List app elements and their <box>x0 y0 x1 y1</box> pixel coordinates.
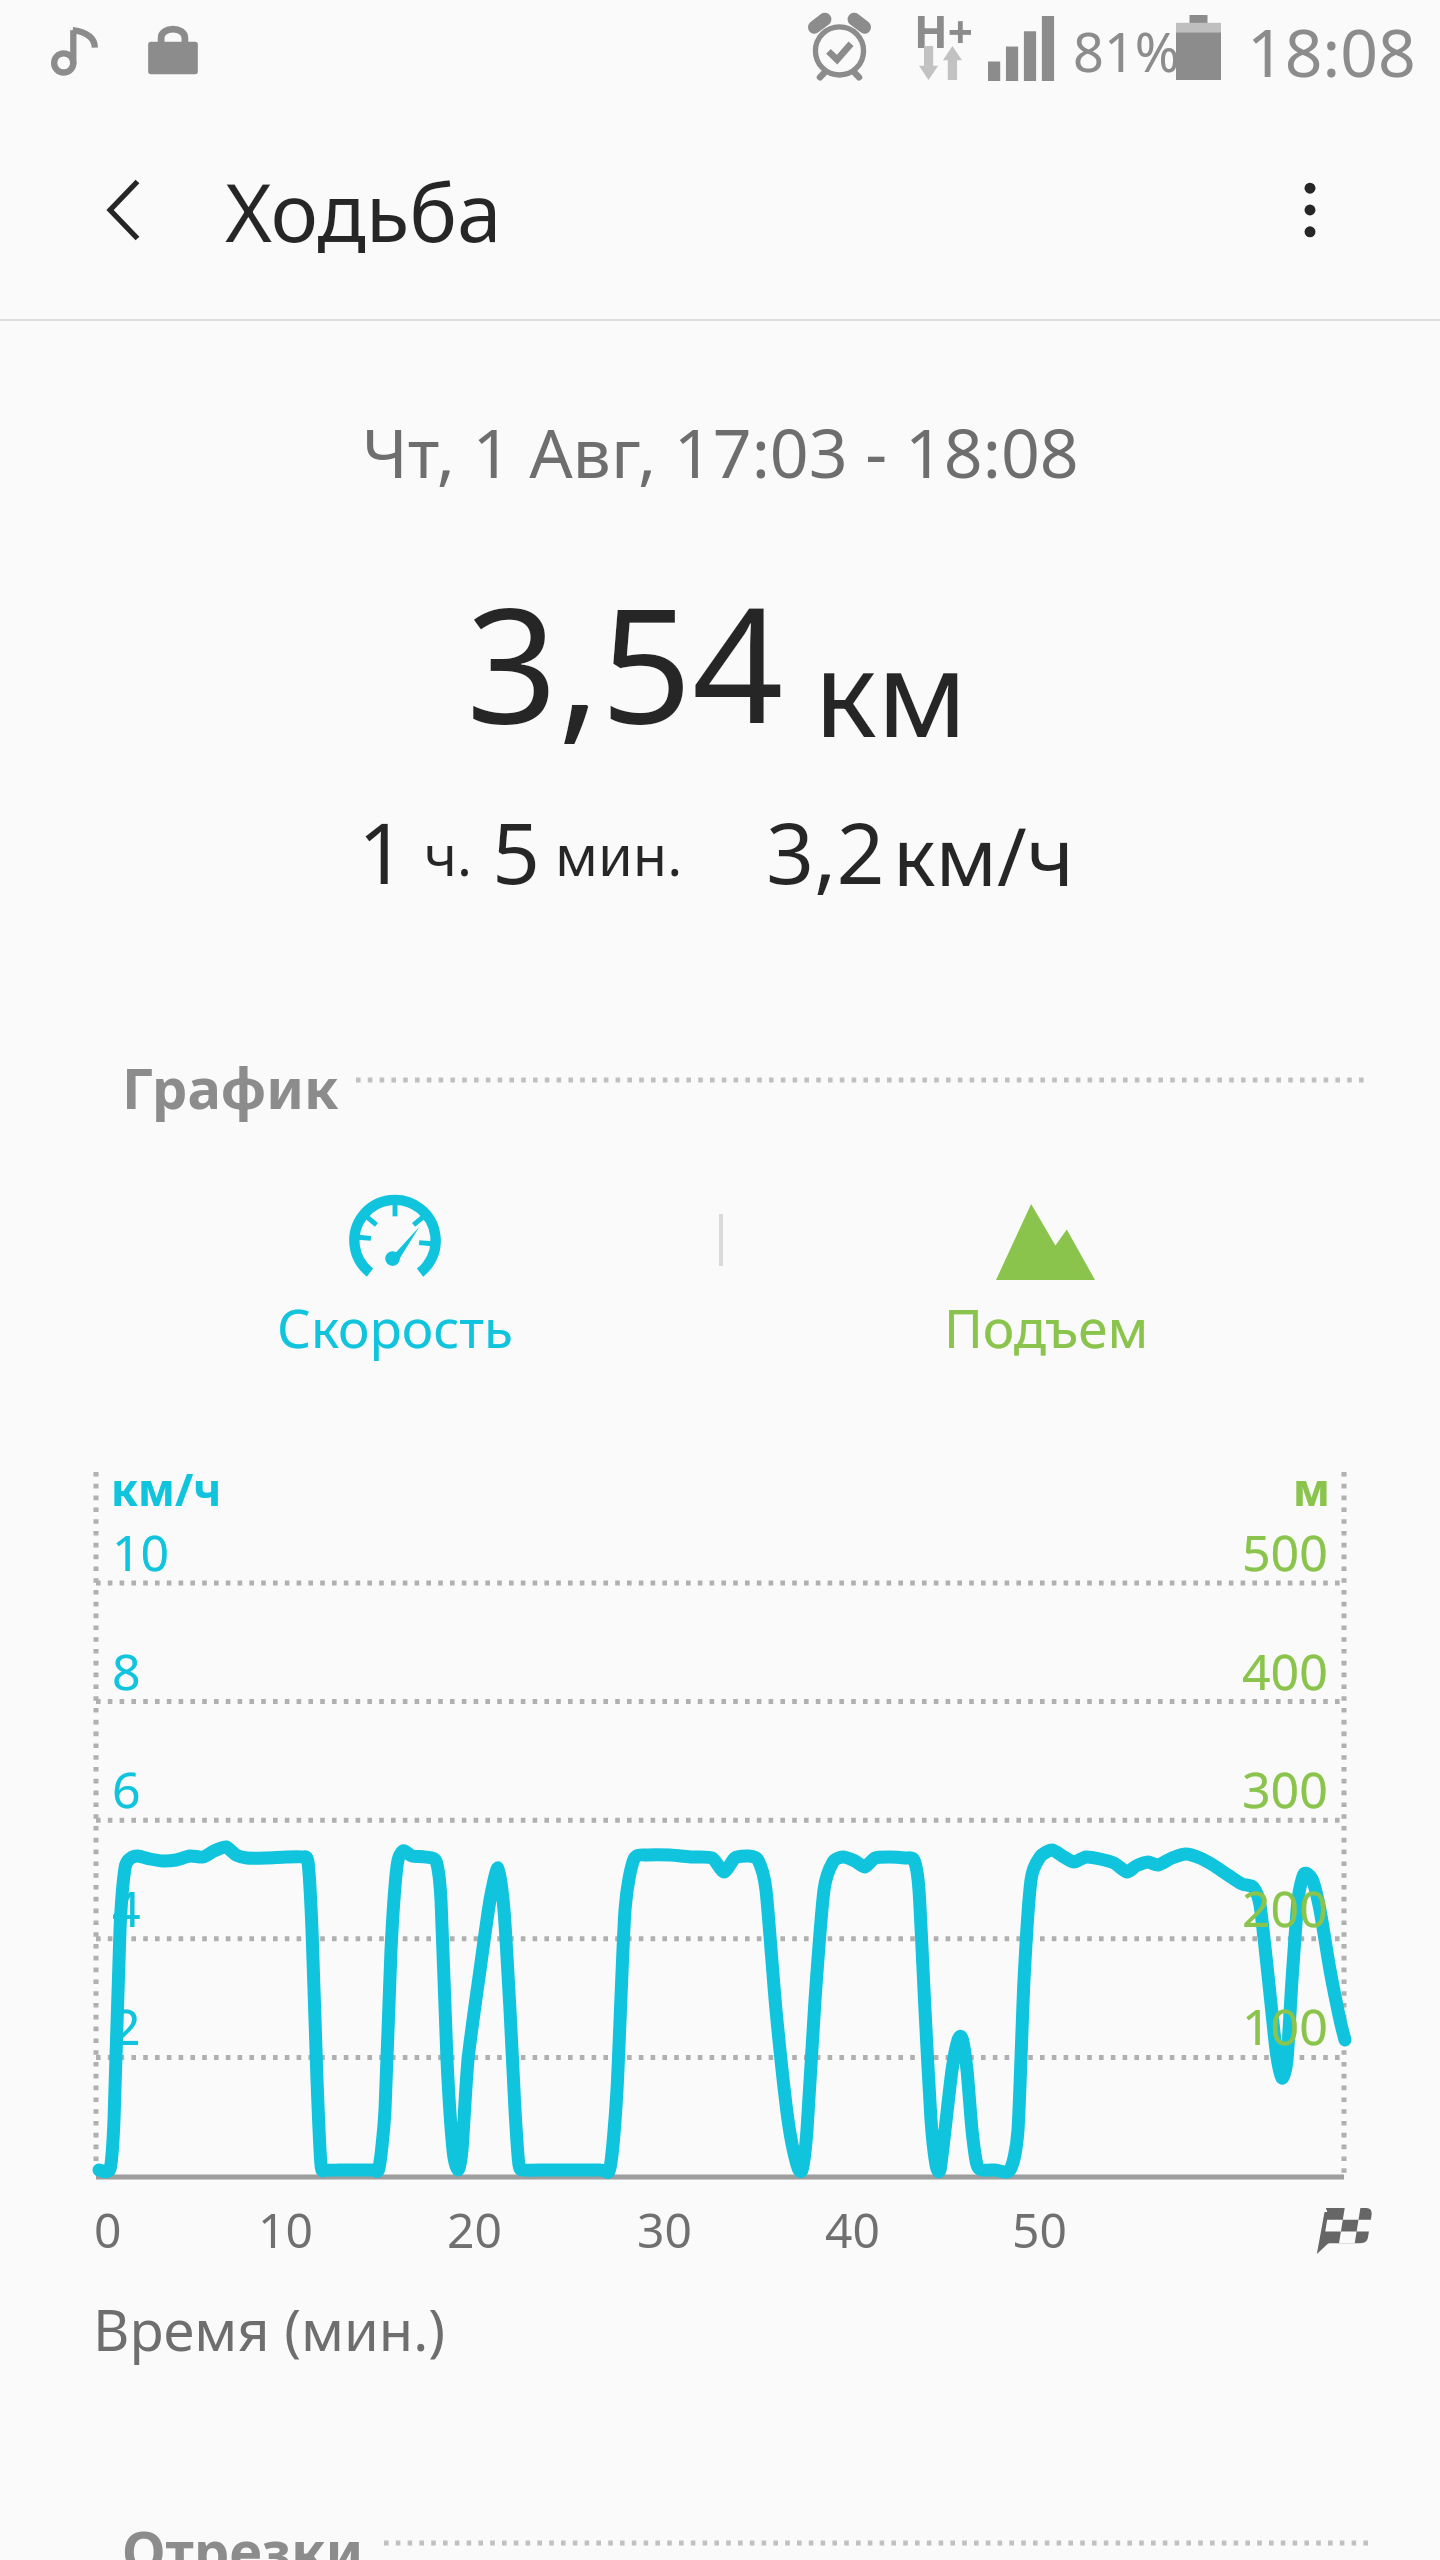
staticText: ч. <box>424 816 472 892</box>
staticText: км/ч <box>893 800 1074 909</box>
staticText: 81% <box>1073 14 1180 88</box>
staticText: Скорость <box>277 1291 513 1363</box>
staticText: 3,54 <box>466 552 784 770</box>
staticText: 0 <box>94 2197 122 2262</box>
button[interactable]: Скорость <box>250 1190 540 1365</box>
staticText: мин. <box>555 816 683 892</box>
staticText: 50 <box>1012 2197 1067 2262</box>
staticText: Время (мин.) <box>93 2291 445 2367</box>
staticText: 30 <box>637 2197 692 2262</box>
staticText: км <box>814 611 968 772</box>
staticText: 100 <box>1242 1992 1328 2060</box>
button[interactable]: Finish <box>1306 2200 1376 2260</box>
staticText: 8 <box>112 1637 141 1705</box>
staticText: 10 <box>258 2197 313 2262</box>
staticText: Подъем <box>944 1291 1149 1363</box>
staticText: км/ч <box>111 1459 222 1519</box>
staticText: Чт, 1 Авг, 17:03 - 18:08 <box>362 405 1079 498</box>
staticText: 6 <box>112 1755 141 1823</box>
staticText: 20 <box>447 2197 502 2262</box>
staticText: 300 <box>1242 1755 1328 1823</box>
staticText: 1 <box>358 794 407 908</box>
staticText: 18:08 <box>1247 6 1416 96</box>
staticText: 2 <box>112 1992 141 2060</box>
staticText: 5 <box>492 794 541 908</box>
staticText: 400 <box>1242 1637 1328 1705</box>
staticText: м <box>1293 1459 1330 1519</box>
staticText: График <box>122 1049 339 1125</box>
staticText: H+ <box>914 1 973 61</box>
staticText: Ходьба <box>225 156 502 265</box>
staticText: 4 <box>112 1874 141 1942</box>
staticText: Отрезки <box>122 2512 364 2560</box>
staticText: 200 <box>1242 1874 1328 1942</box>
button[interactable]: Подъем <box>900 1190 1190 1365</box>
staticText: 3,2 <box>766 794 885 908</box>
staticText: 500 <box>1242 1518 1328 1586</box>
button[interactable]: Back <box>60 144 192 276</box>
button[interactable]: More options <box>1244 144 1376 276</box>
staticText: 10 <box>112 1518 170 1586</box>
staticText: 40 <box>825 2197 880 2262</box>
